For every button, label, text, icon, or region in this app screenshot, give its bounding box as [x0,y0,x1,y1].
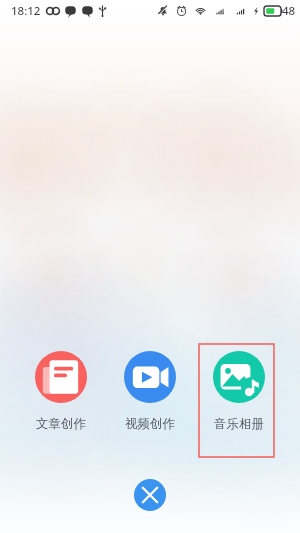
staticText: 48 [282,3,296,19]
button[interactable]: 视频创作 [112,351,188,432]
staticText: 18:12 [11,3,41,19]
staticText: 视频创作 [125,416,175,432]
button[interactable]: 文章创作 [23,351,99,432]
button[interactable]: 关闭 [134,479,166,511]
staticText: 文章创作 [36,416,86,432]
staticText: 音乐相册 [214,416,264,432]
button[interactable]: 音乐相册 [201,351,277,432]
